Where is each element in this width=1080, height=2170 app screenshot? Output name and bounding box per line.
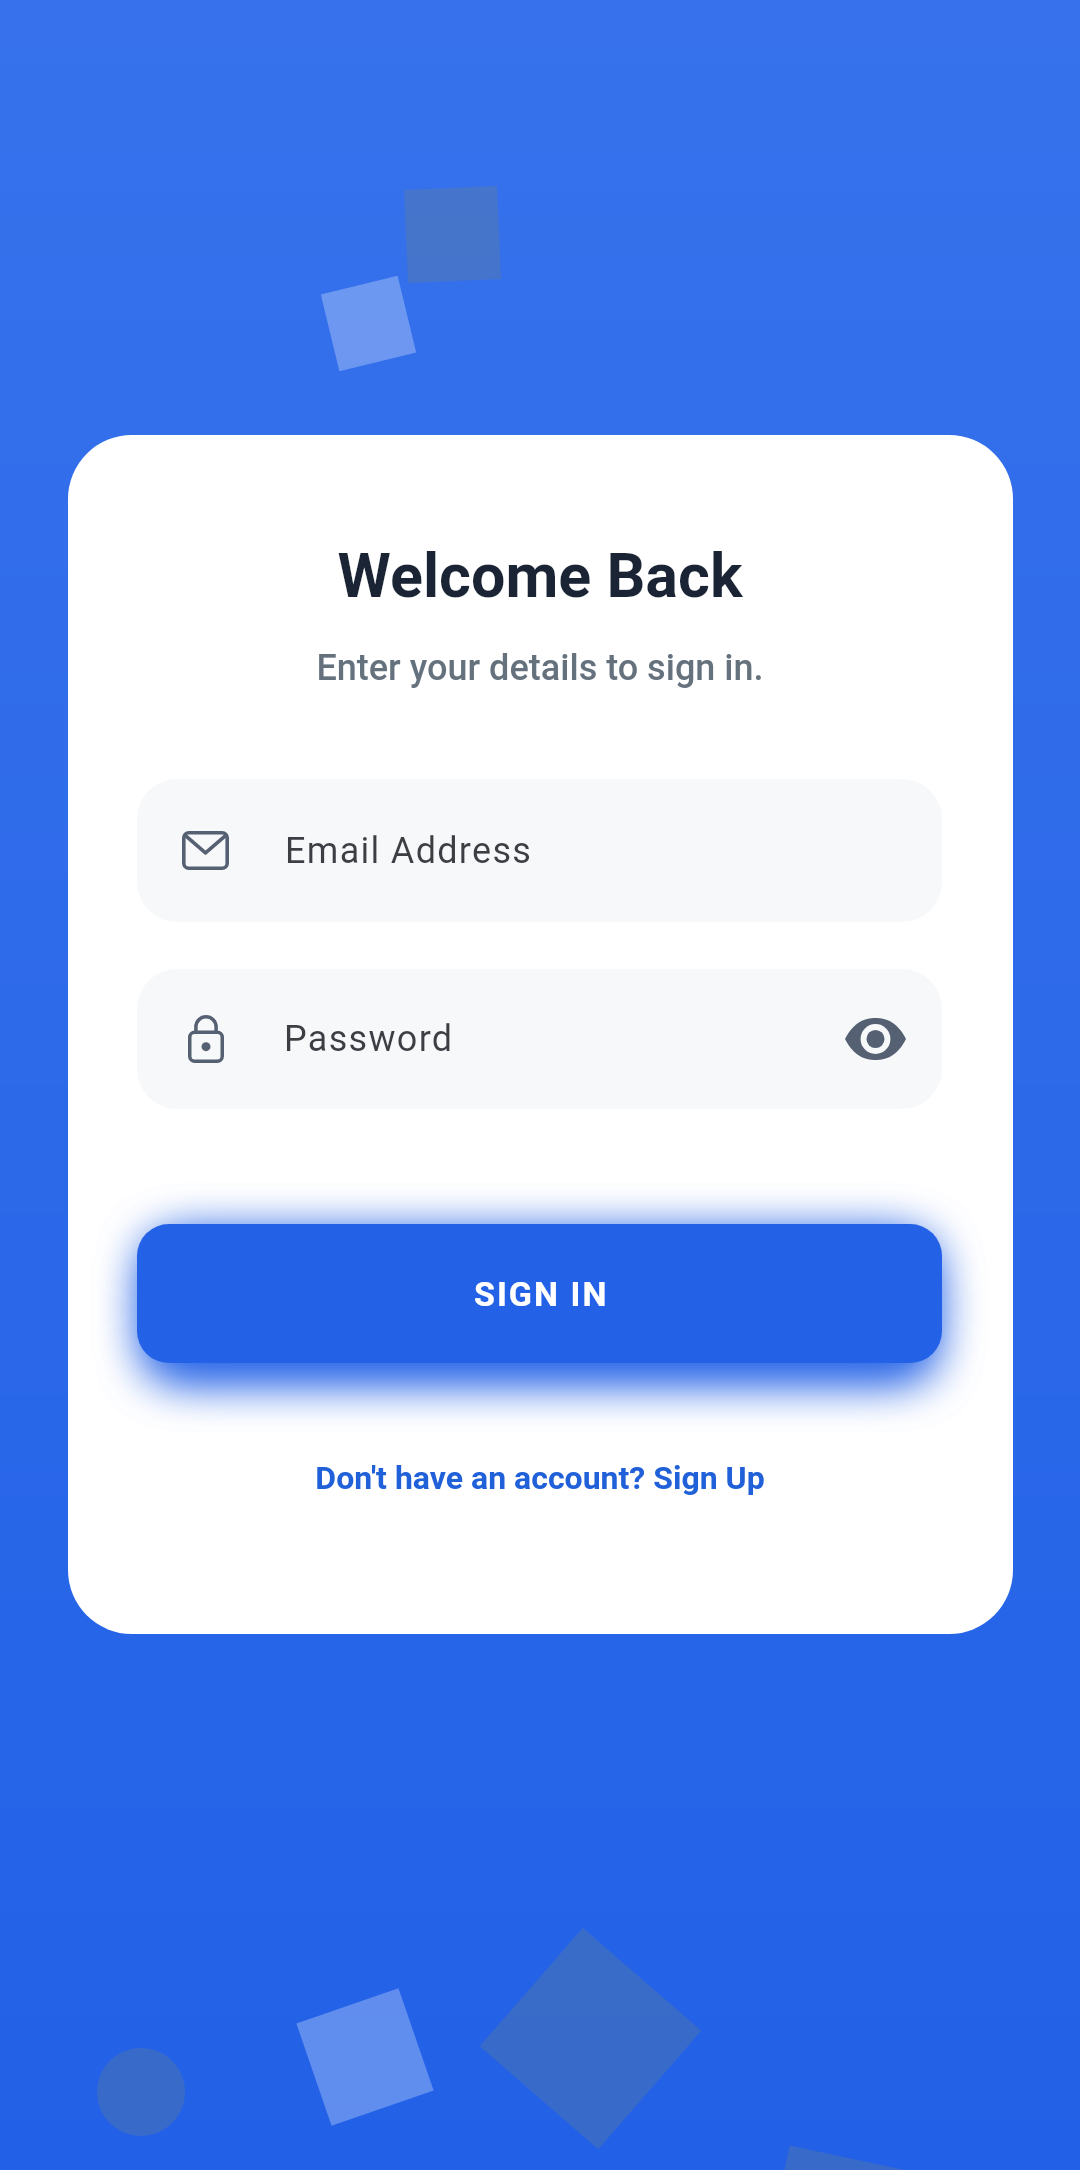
button[interactable]: Password: [137, 969, 942, 1109]
button[interactable]: Don't have an account? Sign Up: [299, 1445, 781, 1511]
staticText: SIGN IN: [474, 1274, 609, 1314]
button[interactable]: Email Address: [137, 779, 942, 922]
staticText: Enter your details to sign in.: [0, 647, 1080, 689]
staticText: Email Address: [285, 830, 533, 872]
button[interactable]: Show password: [830, 994, 920, 1084]
staticText: Password: [284, 1018, 454, 1060]
staticText: Welcome Back: [0, 540, 1080, 611]
button[interactable]: SIGN IN: [137, 1224, 942, 1363]
staticText: Don't have an account? Sign Up: [315, 1459, 765, 1497]
